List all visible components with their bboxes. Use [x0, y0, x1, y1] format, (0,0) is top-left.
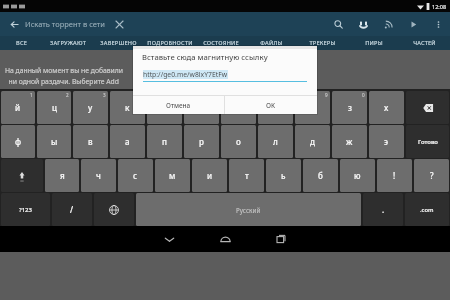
- button[interactable]: н: [184, 91, 219, 124]
- button[interactable]: Готово: [406, 125, 449, 158]
- staticText: Вставьте сюда магнитную ссылку: [142, 52, 268, 62]
- button[interactable]: у: [73, 91, 108, 124]
- button[interactable]: а: [110, 125, 145, 158]
- button[interactable]: Back: [6, 16, 22, 32]
- staticText: ЗАВЕРШЕНО: [100, 39, 137, 47]
- button[interactable]: ц: [37, 91, 71, 124]
- button[interactable]: ПИРЫ: [348, 36, 399, 50]
- button[interactable]: й: [1, 91, 35, 124]
- button[interactable]: к: [110, 91, 145, 124]
- button[interactable]: л: [258, 125, 293, 158]
- staticText: ни одной раздачи. Выберите Add: [5, 77, 119, 86]
- staticText: ФАЙЛЫ: [260, 39, 283, 47]
- button[interactable]: ?: [414, 159, 449, 192]
- button[interactable]: Shift: [1, 159, 43, 192]
- staticText: в: [88, 136, 93, 147]
- button[interactable]: Отмена: [133, 96, 224, 114]
- staticText: СОСТОЯНИЕ: [203, 39, 239, 47]
- button[interactable]: п: [147, 125, 182, 158]
- staticText: й: [15, 102, 21, 113]
- staticText: а: [125, 136, 130, 147]
- staticText: ш: [272, 102, 280, 113]
- button[interactable]: и: [192, 159, 227, 192]
- button[interactable]: СОСТОЯНИЕ: [195, 36, 246, 50]
- button[interactable]: ПОДРОБНОСТИ: [144, 36, 195, 50]
- staticText: ?: [430, 170, 434, 181]
- button[interactable]: Hide keyboard: [152, 226, 186, 252]
- button[interactable]: .: [363, 193, 403, 226]
- button[interactable]: Recent apps: [264, 226, 298, 252]
- button[interactable]: г: [221, 91, 256, 124]
- button[interactable]: OK: [225, 96, 317, 114]
- staticText: ТРЕКЕРЫ: [309, 39, 336, 47]
- button[interactable]: Start: [405, 16, 421, 32]
- button[interactable]: ФАЙЛЫ: [246, 36, 297, 50]
- staticText: о: [236, 136, 241, 147]
- button[interactable]: ЗАВЕРШЕНО: [93, 36, 144, 50]
- button[interactable]: ж: [332, 125, 367, 158]
- button[interactable]: е: [147, 91, 182, 124]
- button[interactable]: /: [52, 193, 92, 226]
- button[interactable]: ч: [81, 159, 116, 192]
- button[interactable]: ы: [37, 125, 71, 158]
- staticText: 0: [362, 92, 365, 98]
- staticText: п: [162, 136, 167, 147]
- staticText: т: [245, 170, 249, 181]
- button[interactable]: ВСЕ: [0, 36, 42, 50]
- button[interactable]: Home: [208, 226, 242, 252]
- staticText: з: [348, 102, 352, 113]
- button[interactable]: з: [332, 91, 367, 124]
- staticText: 12:08: [432, 3, 447, 10]
- staticText: 4: [140, 92, 143, 98]
- staticText: у: [88, 102, 93, 113]
- button[interactable]: Backspace: [406, 91, 449, 124]
- staticText: 7: [251, 92, 254, 98]
- button[interactable]: RSS feed: [380, 16, 396, 32]
- button[interactable]: б: [303, 159, 338, 192]
- staticText: р: [199, 136, 204, 147]
- button[interactable]: д: [295, 125, 330, 158]
- button[interactable]: ю: [340, 159, 375, 192]
- button[interactable]: Search: [330, 16, 346, 32]
- button[interactable]: .com: [405, 193, 449, 226]
- staticText: ь: [281, 170, 286, 181]
- button[interactable]: ф: [1, 125, 35, 158]
- staticText: ПИРЫ: [365, 39, 383, 47]
- button[interactable]: х: [369, 91, 404, 124]
- staticText: .com: [420, 206, 434, 214]
- button[interactable]: я: [45, 159, 79, 192]
- staticText: э: [384, 136, 389, 147]
- button[interactable]: ?123: [1, 193, 50, 226]
- staticText: и: [207, 170, 213, 181]
- button[interactable]: ТРЕКЕРЫ: [297, 36, 348, 50]
- button[interactable]: ЗАГРУЖАЮТ: [42, 36, 93, 50]
- button[interactable]: ь: [266, 159, 301, 192]
- staticText: ж: [346, 136, 353, 147]
- button[interactable]: щ: [295, 91, 330, 124]
- button[interactable]: Magnet link: [355, 16, 371, 32]
- staticText: ф: [15, 136, 22, 147]
- staticText: http://ge0.me/w8lxY7EtFw: [143, 70, 228, 79]
- staticText: я: [60, 170, 65, 181]
- button[interactable]: с: [118, 159, 153, 192]
- button[interactable]: м: [155, 159, 190, 192]
- button[interactable]: More options: [430, 16, 446, 32]
- button[interactable]: т: [229, 159, 264, 192]
- button[interactable]: !: [377, 159, 412, 192]
- staticText: !: [393, 170, 396, 181]
- button[interactable]: Clear: [112, 17, 126, 31]
- button[interactable]: в: [73, 125, 108, 158]
- button[interactable]: о: [221, 125, 256, 158]
- staticText: 3: [103, 92, 106, 98]
- staticText: е: [162, 102, 167, 113]
- button[interactable]: р: [184, 125, 219, 158]
- staticText: ЧАСТЕЙ: [413, 39, 436, 47]
- button[interactable]: ЧАСТЕЙ: [399, 36, 450, 50]
- staticText: На данный момент вы не добавили: [5, 66, 124, 75]
- button[interactable]: ш: [258, 91, 293, 124]
- button[interactable]: э: [369, 125, 404, 158]
- button[interactable]: Change language: [94, 193, 134, 226]
- button[interactable]: Русский: [136, 193, 361, 226]
